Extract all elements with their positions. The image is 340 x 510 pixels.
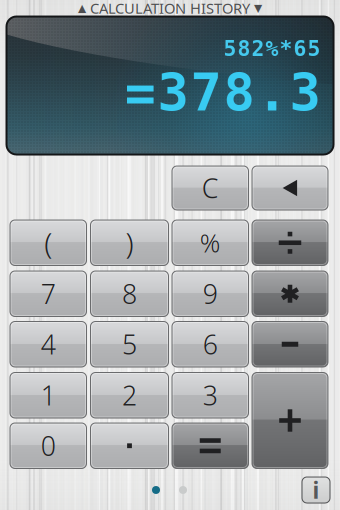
button[interactable]: 2: [90, 372, 168, 418]
button[interactable]: 9: [172, 271, 248, 316]
staticText: %: [200, 226, 221, 259]
staticText: 1: [41, 377, 56, 413]
staticText: ▼: [254, 2, 262, 14]
button[interactable]: ): [90, 220, 168, 265]
staticText: i: [312, 475, 319, 505]
staticText: 5: [122, 326, 137, 362]
button[interactable]: 4: [10, 321, 86, 367]
staticText: ▲: [78, 2, 86, 14]
button[interactable]: ▲: [0, 0, 340, 16]
button[interactable]: 0: [10, 423, 86, 468]
button[interactable]: Backspace: [252, 166, 328, 210]
staticText: 3: [203, 377, 218, 413]
staticText: C: [202, 170, 219, 206]
staticText: 4: [41, 326, 56, 362]
staticText: 6: [203, 326, 218, 362]
button[interactable]: C: [172, 166, 248, 210]
staticText: 2: [122, 377, 137, 413]
staticText: 8: [122, 276, 137, 311]
button[interactable]: 7: [10, 271, 86, 316]
staticText: 582%*65: [223, 36, 320, 61]
button[interactable]: 5: [90, 321, 168, 367]
button[interactable]: 6: [172, 321, 248, 367]
button[interactable]: (: [10, 220, 86, 265]
button[interactable]: Decimal point: [90, 423, 168, 468]
button[interactable]: 8: [90, 271, 168, 316]
button[interactable]: Info: [302, 477, 330, 503]
button[interactable]: Multiply: [252, 271, 328, 316]
button[interactable]: Plus: [252, 372, 328, 468]
staticText: (: [44, 223, 52, 262]
staticText: ): [125, 223, 133, 262]
staticText: 7: [41, 276, 56, 311]
staticText: =378.3: [124, 63, 320, 122]
staticText: 9: [203, 276, 218, 311]
button[interactable]: Equals: [172, 423, 248, 468]
button[interactable]: 1: [10, 372, 86, 418]
button[interactable]: %: [172, 220, 248, 265]
button[interactable]: Minus: [252, 321, 328, 367]
staticText: 0: [41, 428, 56, 463]
staticText: CALCULATION HISTORY: [90, 0, 250, 18]
button[interactable]: Divide: [252, 220, 328, 265]
button[interactable]: 3: [172, 372, 248, 418]
